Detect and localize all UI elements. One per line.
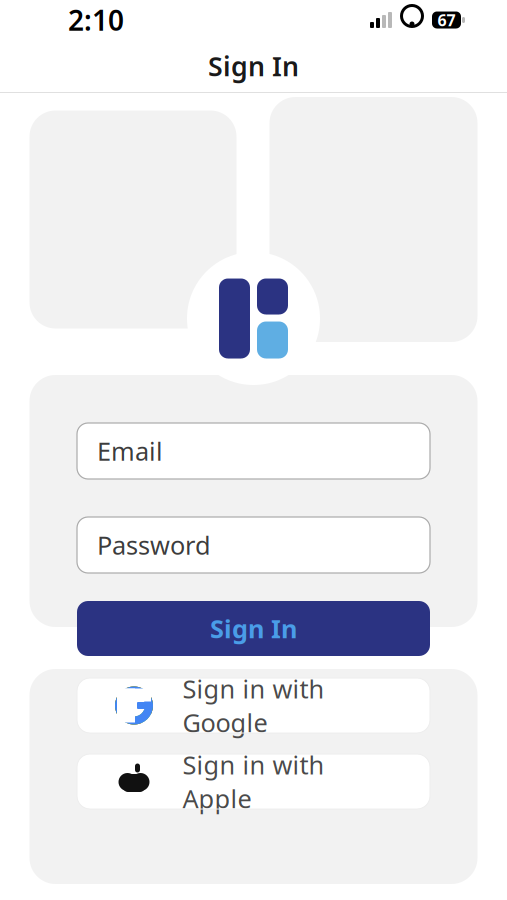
staticText: Password bbox=[97, 528, 211, 562]
staticText: 2:10 bbox=[68, 1, 124, 39]
staticText: 67 bbox=[437, 9, 455, 31]
button[interactable]: Sign in with Google bbox=[77, 678, 430, 733]
button[interactable]: Sign In bbox=[77, 601, 430, 656]
staticText: Sign in with Apple bbox=[182, 748, 324, 815]
button[interactable]: Sign in with Apple bbox=[77, 754, 430, 809]
staticText: Sign in with Google bbox=[182, 672, 324, 739]
staticText: Sign In bbox=[210, 612, 297, 645]
staticText: Sign In bbox=[208, 48, 299, 84]
staticText: Email bbox=[97, 434, 163, 468]
